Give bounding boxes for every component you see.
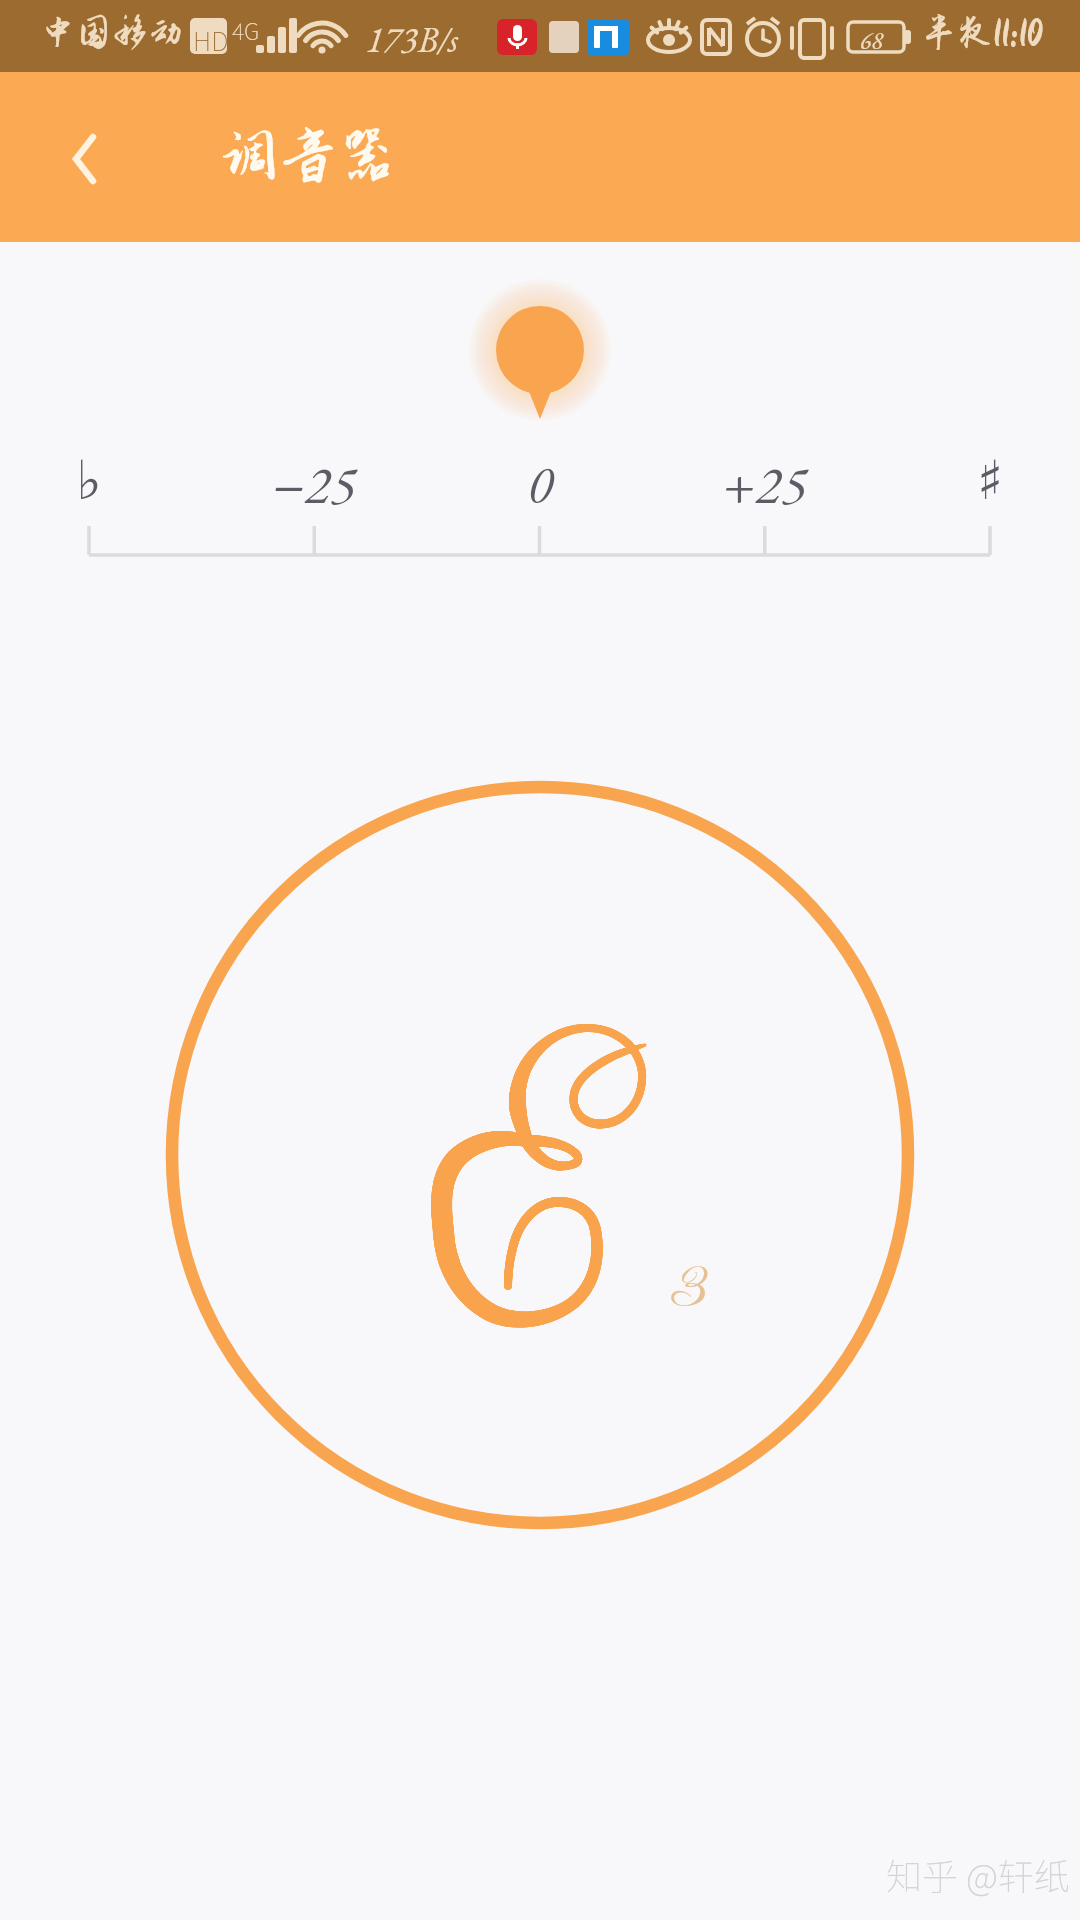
staticText: 0	[450, 449, 630, 519]
staticText: 知乎 @轩纸	[886, 1848, 1070, 1900]
staticText: 半夜11:10	[921, 13, 1043, 53]
staticText: 4G	[232, 13, 260, 46]
staticText: ♭	[0, 449, 179, 512]
button[interactable]: Back	[39, 113, 127, 201]
staticText: 3	[667, 1243, 706, 1328]
staticText: 中国移动	[40, 13, 184, 53]
staticText: −25	[224, 449, 404, 519]
staticText: +25	[675, 449, 855, 519]
staticText: ♯	[900, 449, 1080, 512]
staticText: HD	[193, 21, 229, 59]
staticText: 68	[860, 25, 884, 56]
staticText: 173B/s	[366, 16, 459, 63]
staticText: 调音器	[219, 123, 398, 189]
